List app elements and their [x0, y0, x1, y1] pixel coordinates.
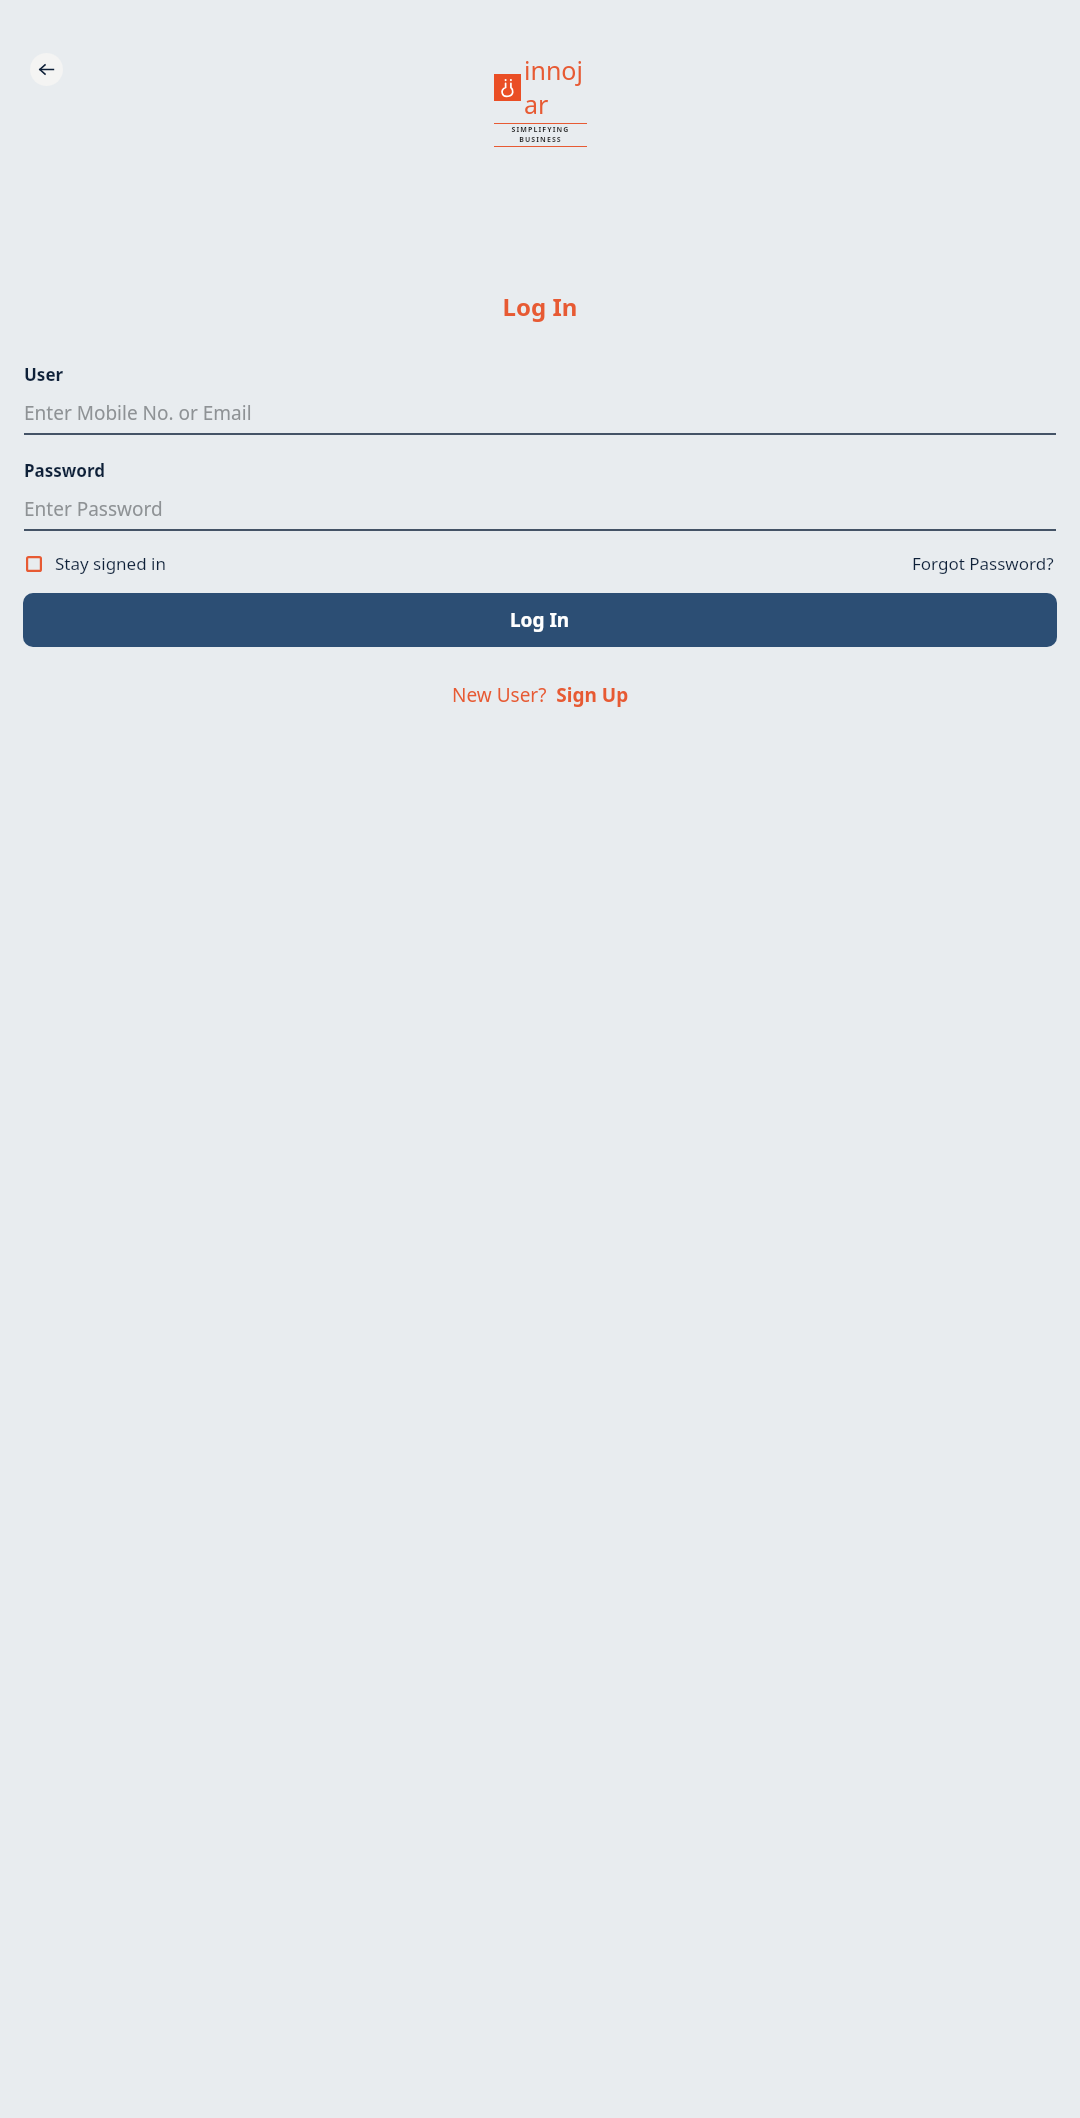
button[interactable]: New User? Sign Up — [446, 678, 635, 712]
staticText: innojar — [524, 53, 587, 121]
staticText: SIMPLIFYING BUSINESS — [494, 125, 587, 145]
staticText: Password — [24, 459, 105, 482]
button[interactable]: Back — [30, 53, 63, 86]
button[interactable]: Enter Password — [24, 496, 1056, 531]
button[interactable]: Forgot Password? — [910, 546, 1056, 581]
staticText: Enter Password — [24, 496, 163, 522]
staticText: Forgot Password? — [912, 552, 1054, 575]
button[interactable]: innojar logo — [494, 53, 587, 147]
button[interactable]: Stay signed in — [24, 546, 168, 581]
staticText: New User? Sign Up — [452, 682, 629, 708]
staticText: Enter Mobile No. or Email — [24, 400, 252, 426]
button[interactable]: Log In — [23, 593, 1057, 647]
button[interactable]: Enter Mobile No. or Email — [24, 400, 1056, 435]
staticText: User — [24, 363, 64, 386]
staticText: Stay signed in — [55, 552, 166, 575]
staticText: Log In — [0, 290, 1080, 323]
staticText: Log In — [510, 607, 570, 633]
